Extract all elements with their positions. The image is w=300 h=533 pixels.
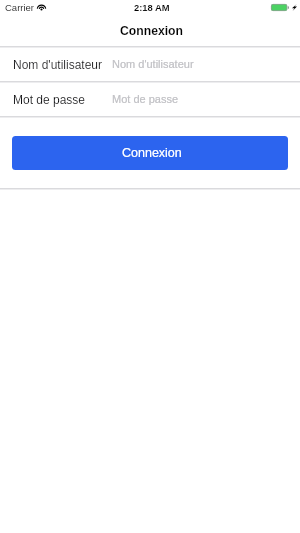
staticText: Connexion: [120, 24, 183, 38]
button[interactable]: Connexion: [12, 136, 288, 170]
staticText: Connexion: [122, 146, 182, 160]
other: Charging: [292, 4, 297, 11]
other: Wi-Fi: [37, 3, 46, 10]
staticText: Nom d'utilisateur: [112, 58, 194, 70]
staticText: Mot de passe: [13, 93, 86, 106]
button[interactable]: Nom d'utilisateur: [0, 47, 300, 80]
staticText: Nom d'utilisateur: [13, 58, 102, 71]
button[interactable]: Mot de passe: [0, 82, 300, 115]
staticText: 2:18 AM: [134, 2, 170, 13]
other: Battery full: [271, 4, 289, 11]
staticText: Mot de passe: [112, 93, 179, 105]
staticText: Carrier: [5, 2, 35, 13]
